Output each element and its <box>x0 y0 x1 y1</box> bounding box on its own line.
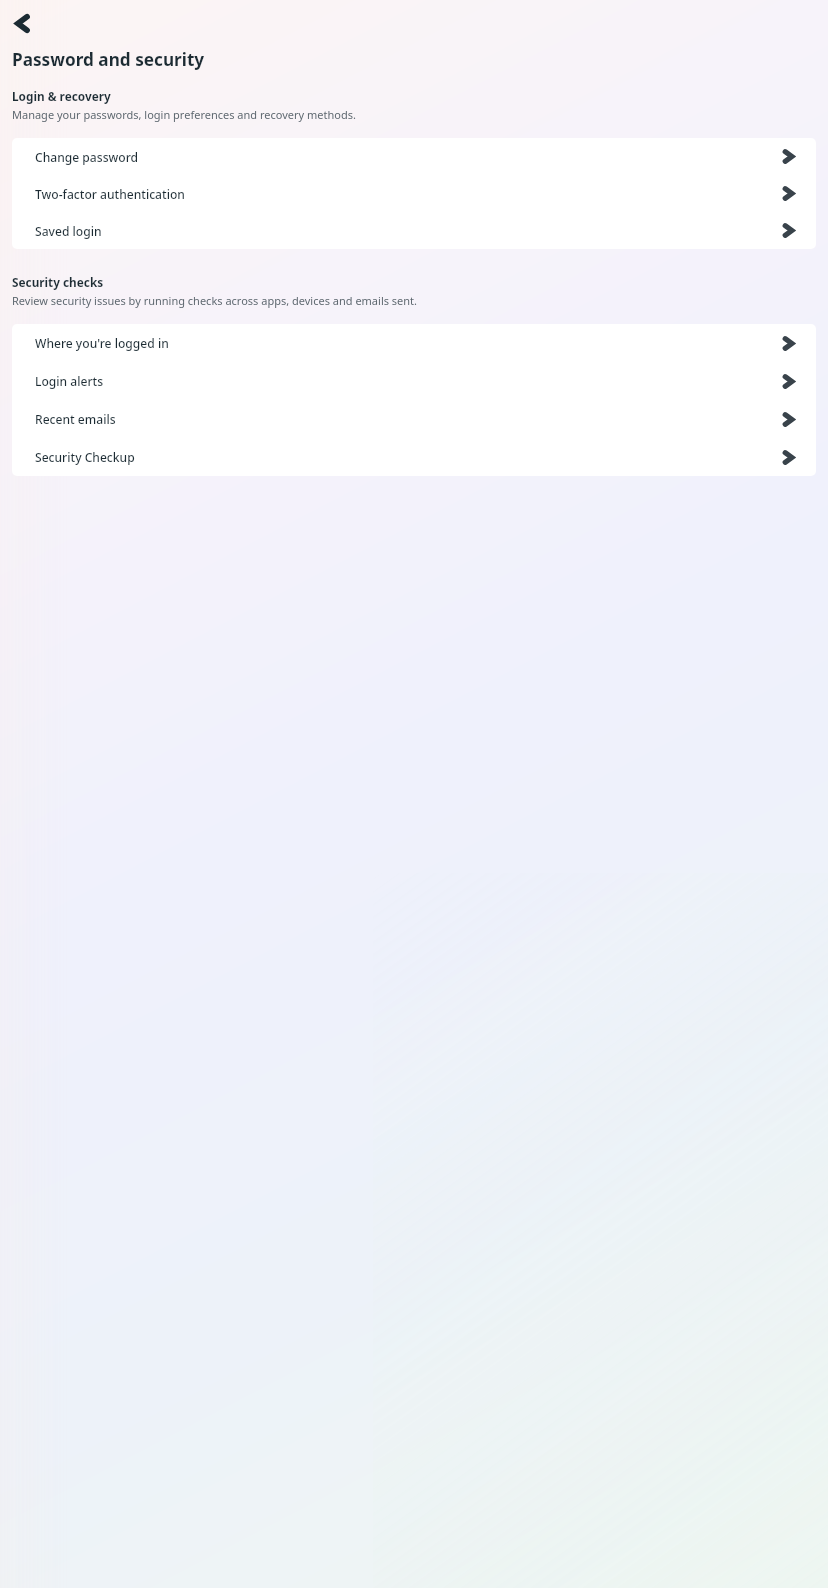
staticText: Login alerts <box>35 373 775 389</box>
button[interactable]: Change password <box>12 138 816 175</box>
button[interactable]: Login alerts <box>12 362 816 400</box>
staticText: Change password <box>35 149 775 165</box>
staticText: Where you're logged in <box>35 335 775 351</box>
staticText: Login & recovery <box>12 88 111 104</box>
button[interactable]: Back <box>5 6 39 40</box>
staticText: Manage your passwords, login preferences… <box>12 107 356 122</box>
staticText: Saved login <box>35 223 775 239</box>
staticText: Security checks <box>12 274 104 290</box>
button[interactable]: Saved login <box>12 212 816 249</box>
staticText: Review security issues by running checks… <box>12 293 418 308</box>
button[interactable]: Two-factor authentication <box>12 175 816 212</box>
button[interactable]: Where you're logged in <box>12 324 816 362</box>
button[interactable]: Recent emails <box>12 400 816 438</box>
staticText: Recent emails <box>35 411 775 427</box>
staticText: Password and security <box>12 48 205 71</box>
staticText: Security Checkup <box>35 449 775 465</box>
button[interactable]: Security Checkup <box>12 438 816 476</box>
staticText: Two-factor authentication <box>35 186 775 202</box>
